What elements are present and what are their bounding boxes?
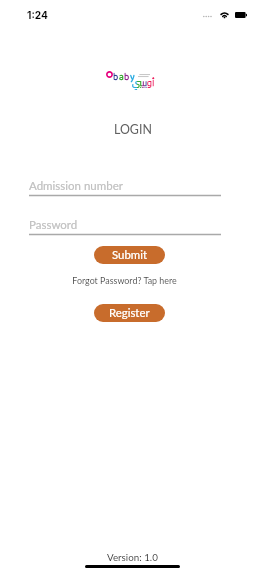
staticText: Admission number — [29, 179, 123, 193]
button[interactable]: Admission number — [29, 179, 221, 197]
staticText: y — [130, 70, 135, 85]
staticText: b — [113, 70, 119, 85]
button[interactable]: Forgot Password? Tap here — [70, 273, 179, 288]
staticText: أوبيبي — [132, 74, 155, 91]
staticText: Submit — [112, 248, 147, 262]
other: Obaby logo — [105, 68, 157, 88]
staticText: Register — [109, 306, 150, 320]
staticText: LOGIN — [114, 122, 152, 137]
staticText: a — [119, 70, 124, 85]
button[interactable]: Password — [29, 218, 221, 236]
staticText: Forgot Password? Tap here — [72, 275, 177, 286]
button[interactable]: Submit — [94, 246, 165, 264]
other: Cellular signal — [203, 15, 212, 18]
staticText: 1:24 — [27, 9, 48, 21]
other: Wi-Fi — [219, 11, 230, 18]
button[interactable]: Register — [94, 304, 165, 322]
staticText: Version: 1.0 — [107, 551, 158, 563]
other: Battery — [235, 12, 247, 18]
staticText: b — [124, 70, 130, 85]
staticText: Password — [29, 218, 78, 232]
